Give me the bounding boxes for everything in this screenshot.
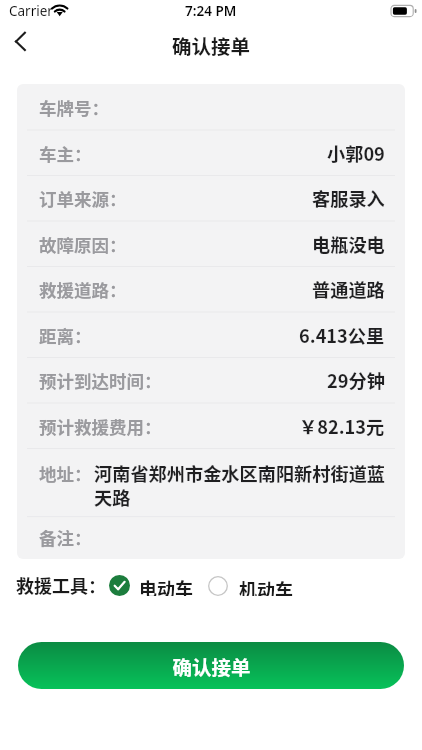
staticText: 距离： [39,323,92,348]
button[interactable]: 确认接单 [18,642,404,689]
staticText: 7:24 PM [185,2,237,20]
staticText: 车主： [39,141,92,166]
button[interactable]: Back [2,21,44,63]
staticText: 普通道路 [312,276,385,302]
staticText: ￥82.13元 [299,413,385,439]
staticText: 故障原因： [39,232,127,257]
staticText: 确认接单 [172,652,251,680]
staticText: 救援工具： [16,572,106,598]
staticText: 预计救援费用： [39,414,162,439]
staticText: Carrier [9,2,53,20]
button[interactable]: 机动车 [208,576,293,596]
staticText: 电瓶没电 [312,231,385,257]
staticText: 6.413公里 [299,322,385,348]
staticText: 车牌号： [39,95,109,120]
staticText: 地址： [39,461,92,486]
staticText: 29分钟 [327,367,385,393]
staticText: 备注： [39,525,92,550]
staticText: 救援道路： [39,277,127,302]
staticText: 河南省郑州市金水区南阳新村街道蓝天路 [94,460,385,510]
staticText: 机动车 [239,576,293,596]
staticText: 客服录入 [312,185,385,211]
staticText: 确认接单 [172,31,251,59]
staticText: 小郭09 [327,140,385,166]
button[interactable]: 电动车 [109,575,193,596]
staticText: 预计到达时间： [39,368,162,393]
staticText: 订单来源： [39,186,127,211]
staticText: 电动车 [139,575,193,596]
